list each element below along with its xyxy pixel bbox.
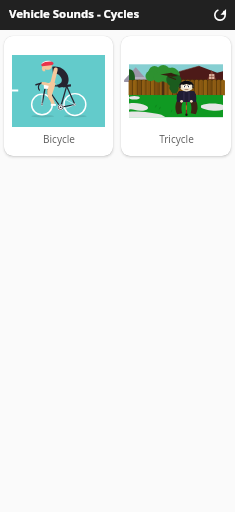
button[interactable]: Bicycle [4,36,113,156]
button[interactable]: Tricycle [121,36,231,156]
staticText: Vehicle Sounds - Cycles [9,6,140,22]
staticText: Tricycle [159,132,194,146]
button[interactable]: Refresh [209,4,231,26]
staticText: Bicycle [43,132,75,146]
